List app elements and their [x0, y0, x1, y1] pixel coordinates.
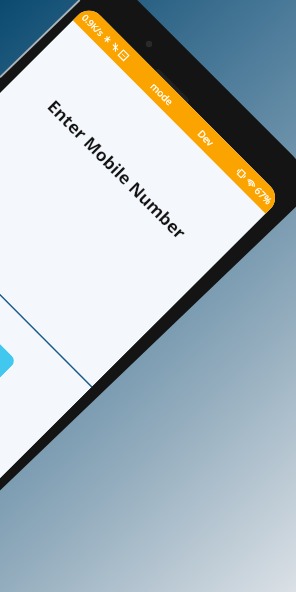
staticText: Enter Mobile Number — [13, 64, 222, 274]
staticText: Dev — [195, 127, 217, 149]
staticText: mode — [148, 80, 176, 108]
staticText: 0.9K/s — [80, 11, 107, 39]
staticText: 67% — [252, 184, 275, 207]
